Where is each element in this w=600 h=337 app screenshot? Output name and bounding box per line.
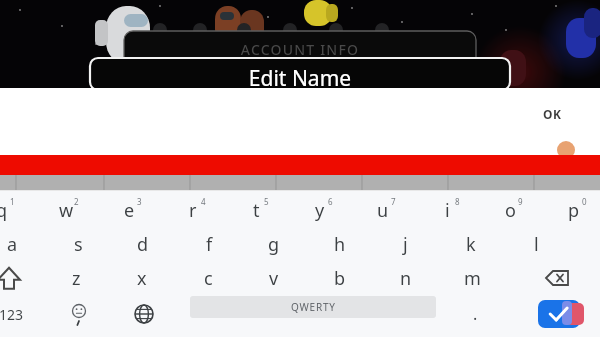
- staticText: b: [334, 266, 346, 291]
- staticText: l: [534, 232, 539, 257]
- button[interactable]: s: [51, 226, 105, 262]
- button[interactable]: h: [313, 226, 367, 262]
- staticText: e: [124, 198, 135, 223]
- staticText: 6: [328, 196, 333, 207]
- staticText: q: [0, 198, 8, 223]
- button[interactable]: t: [228, 192, 284, 228]
- staticText: z: [72, 266, 81, 291]
- button[interactable]: OK: [530, 101, 574, 127]
- button[interactable]: f: [182, 226, 236, 262]
- button[interactable]: Backspace: [533, 260, 581, 296]
- button[interactable]: u: [355, 192, 411, 228]
- staticText: .: [473, 303, 478, 325]
- staticText: m: [464, 266, 481, 291]
- button[interactable]: a: [0, 226, 39, 262]
- button[interactable]: Emoji: [56, 296, 102, 332]
- staticText: 3: [137, 196, 142, 207]
- staticText: x: [137, 266, 147, 291]
- button[interactable]: w: [38, 192, 94, 228]
- staticText: k: [466, 232, 476, 257]
- button[interactable]: Change keyboard language: [121, 296, 167, 332]
- staticText: 9: [518, 196, 523, 207]
- staticText: Edit Name: [90, 64, 510, 90]
- button[interactable]: Enter: [538, 300, 586, 328]
- button[interactable]: Shift: [0, 260, 28, 296]
- staticText: g: [268, 232, 280, 257]
- staticText: QWERTY: [291, 300, 336, 314]
- button[interactable]: g: [247, 226, 301, 262]
- staticText: p: [568, 198, 580, 223]
- button[interactable]: q: [0, 192, 30, 228]
- button[interactable]: r: [165, 192, 221, 228]
- staticText: i: [445, 198, 450, 223]
- staticText: t: [253, 198, 260, 223]
- button[interactable]: k: [444, 226, 498, 262]
- button[interactable]: n: [379, 260, 433, 296]
- button[interactable]: QWERTY: [190, 296, 436, 318]
- staticText: j: [403, 232, 408, 257]
- button[interactable]: x: [115, 260, 169, 296]
- staticText: h: [334, 232, 346, 257]
- button[interactable]: b: [313, 260, 367, 296]
- staticText: r: [189, 198, 197, 223]
- button[interactable]: y: [292, 192, 348, 228]
- staticText: 1: [10, 196, 15, 207]
- button[interactable]: c: [181, 260, 235, 296]
- button[interactable]: d: [116, 226, 170, 262]
- staticText: s: [74, 232, 83, 257]
- button[interactable]: z: [49, 260, 103, 296]
- staticText: u: [377, 198, 389, 223]
- button[interactable]: [90, 58, 510, 90]
- staticText: OK: [543, 106, 562, 122]
- staticText: a: [7, 232, 18, 257]
- staticText: 5: [264, 196, 269, 207]
- button[interactable]: .: [452, 296, 498, 332]
- staticText: 2: [74, 196, 79, 207]
- staticText: 4: [201, 196, 206, 207]
- button[interactable]: e: [101, 192, 157, 228]
- staticText: 8: [455, 196, 460, 207]
- button[interactable]: p: [546, 192, 600, 228]
- button[interactable]: m: [445, 260, 499, 296]
- staticText: c: [204, 266, 213, 291]
- staticText: w: [59, 198, 74, 223]
- button[interactable]: o: [482, 192, 538, 228]
- button[interactable]: j: [378, 226, 432, 262]
- button[interactable]: l: [509, 226, 563, 262]
- staticText: d: [137, 232, 149, 257]
- staticText: o: [505, 198, 516, 223]
- staticText: 0: [582, 196, 587, 207]
- button[interactable]: v: [247, 260, 301, 296]
- staticText: n: [400, 266, 412, 291]
- button[interactable]: ?123: [0, 296, 32, 332]
- staticText: 7: [391, 196, 396, 207]
- staticText: ?123: [0, 305, 24, 324]
- staticText: y: [315, 198, 325, 223]
- staticText: ACCOUNT INFO: [124, 40, 476, 60]
- staticText: f: [206, 232, 213, 257]
- button[interactable]: i: [419, 192, 475, 228]
- staticText: v: [269, 266, 279, 291]
